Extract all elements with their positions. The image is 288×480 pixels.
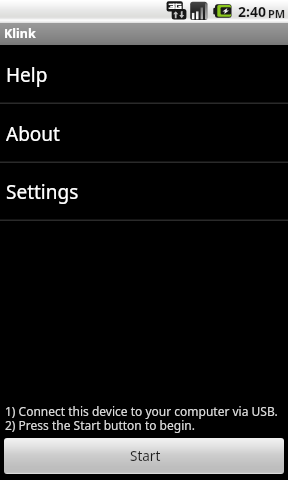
- staticText: Settings: [6, 179, 79, 205]
- staticText: Help: [6, 62, 48, 88]
- button[interactable]: Help: [0, 45, 288, 102]
- staticText: Klink: [4, 25, 36, 42]
- staticText: PM: [268, 6, 286, 21]
- staticText: Start: [130, 447, 161, 465]
- staticText: 2:40: [238, 2, 266, 21]
- button[interactable]: Start: [4, 438, 284, 474]
- staticText: About: [6, 121, 60, 147]
- staticText: 1) Connect this device to your computer …: [5, 403, 278, 419]
- staticText: 2) Press the Start button to begin.: [5, 417, 195, 433]
- button[interactable]: Settings: [0, 163, 288, 219]
- button[interactable]: About: [0, 104, 288, 161]
